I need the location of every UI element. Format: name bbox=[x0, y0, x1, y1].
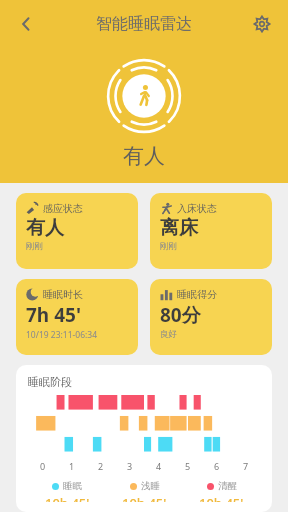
staticText: 10h 45' bbox=[45, 494, 90, 502]
button[interactable]: 感应状态 bbox=[16, 193, 138, 269]
staticText: 7h 45' bbox=[26, 302, 81, 328]
button[interactable]: 睡眠得分 bbox=[150, 279, 272, 355]
button[interactable]: Back bbox=[6, 4, 46, 44]
staticText: 3 bbox=[115, 460, 144, 472]
staticText: 浅睡 bbox=[141, 480, 160, 492]
staticText: 6 bbox=[202, 460, 231, 472]
staticText: 7 bbox=[231, 460, 260, 472]
staticText: 10h 45' bbox=[122, 494, 167, 502]
staticText: 4 bbox=[144, 460, 173, 472]
staticText: 10h 45' bbox=[199, 494, 244, 502]
staticText: 睡眠 bbox=[63, 480, 82, 492]
staticText: 良好 bbox=[160, 329, 177, 340]
staticText: 清醒 bbox=[218, 480, 237, 492]
staticText: 2 bbox=[86, 460, 115, 472]
staticText: 10/19 23:11-06:34 bbox=[26, 329, 98, 341]
staticText: 刚刚 bbox=[26, 241, 43, 252]
staticText: 1 bbox=[57, 460, 86, 472]
staticText: 有人 bbox=[26, 216, 64, 240]
staticText: 睡眠时长 bbox=[43, 288, 83, 301]
staticText: 感应状态 bbox=[43, 202, 83, 215]
staticText: 5 bbox=[173, 460, 202, 472]
button[interactable]: 入床状态 bbox=[150, 193, 272, 269]
button[interactable]: 睡眠时长 bbox=[16, 279, 138, 355]
staticText: 有人 bbox=[123, 143, 165, 169]
staticText: 离床 bbox=[160, 216, 198, 240]
staticText: 入床状态 bbox=[177, 202, 217, 215]
staticText: 0 bbox=[28, 460, 57, 472]
staticText: 智能睡眠雷达 bbox=[96, 14, 192, 34]
staticText: 睡眠得分 bbox=[177, 288, 217, 301]
staticText: 睡眠阶段 bbox=[28, 375, 72, 389]
staticText: 80分 bbox=[160, 302, 201, 328]
button[interactable]: Settings bbox=[242, 4, 282, 44]
staticText: 刚刚 bbox=[160, 241, 177, 252]
